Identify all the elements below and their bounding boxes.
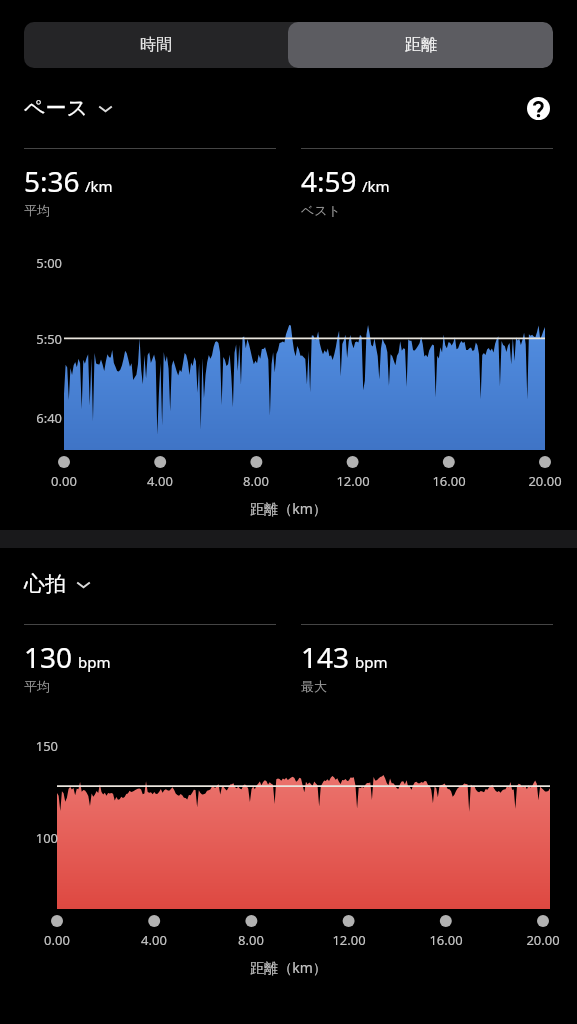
- staticText: 5:50: [20, 330, 62, 348]
- staticText: 100: [20, 829, 58, 847]
- staticText: /km: [85, 176, 113, 196]
- button[interactable]: 心拍: [24, 571, 92, 597]
- staticText: 5:00: [20, 254, 62, 272]
- staticText: 143: [301, 638, 350, 676]
- staticText: 20.00: [509, 931, 577, 949]
- button[interactable]: 距離: [288, 22, 553, 68]
- staticText: /km: [362, 176, 390, 196]
- staticText: 8.00: [222, 472, 290, 490]
- staticText: 16.00: [412, 931, 480, 949]
- staticText: 距離（km）: [0, 958, 577, 977]
- staticText: 6:40: [20, 409, 62, 427]
- staticText: 20.00: [511, 472, 577, 490]
- button[interactable]: Help: [523, 94, 553, 122]
- staticText: 5:36: [24, 162, 80, 200]
- staticText: 時間: [140, 35, 172, 55]
- button[interactable]: 4:59: [301, 148, 553, 218]
- staticText: 12.00: [319, 472, 387, 490]
- staticText: 距離（km）: [0, 499, 577, 518]
- button[interactable]: ペース: [24, 95, 114, 121]
- staticText: 距離: [405, 35, 437, 55]
- staticText: 12.00: [315, 931, 383, 949]
- staticText: 心拍: [24, 571, 66, 597]
- staticText: 平均: [24, 202, 50, 218]
- staticText: bpm: [78, 652, 111, 672]
- staticText: 150: [20, 737, 58, 755]
- button[interactable]: 時間: [24, 22, 288, 68]
- staticText: ベスト: [301, 202, 341, 218]
- staticText: 4.00: [126, 472, 194, 490]
- staticText: 8.00: [217, 931, 285, 949]
- staticText: ペース: [24, 95, 88, 121]
- button[interactable]: 5:36: [24, 148, 276, 218]
- staticText: bpm: [355, 652, 388, 672]
- staticText: 0.00: [23, 931, 91, 949]
- staticText: 4.00: [120, 931, 188, 949]
- staticText: 最大: [301, 678, 327, 694]
- staticText: 16.00: [415, 472, 483, 490]
- staticText: 平均: [24, 678, 50, 694]
- staticText: 0.00: [30, 472, 98, 490]
- button[interactable]: 143: [301, 624, 553, 694]
- staticText: 4:59: [301, 162, 357, 200]
- staticText: 130: [24, 638, 73, 676]
- button[interactable]: 130: [24, 624, 276, 694]
